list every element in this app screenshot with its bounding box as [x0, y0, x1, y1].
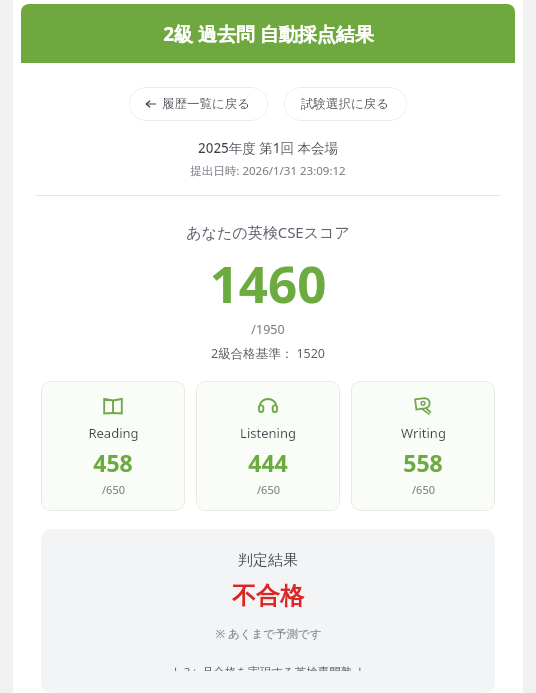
staticText: あなたの英検CSEスコア [13, 222, 523, 242]
staticText: Reading [88, 424, 139, 442]
staticText: /650 [412, 482, 435, 497]
staticText: 履歴一覧に戻る [162, 96, 251, 112]
staticText: 2級 過去問 自動採点結果 [163, 21, 374, 47]
other: Listening [257, 395, 279, 417]
button[interactable]: 試験選択に戻る [284, 87, 407, 121]
staticText: 458 [93, 447, 133, 478]
staticText: 試験選択に戻る [301, 96, 390, 112]
staticText: 558 [403, 447, 443, 478]
staticText: 2級合格基準： 1520 [13, 345, 523, 362]
staticText: Listening [240, 424, 296, 442]
button[interactable]: Listening [196, 381, 340, 511]
staticText: /650 [257, 482, 280, 497]
staticText: ↓ 3ヶ月合格を実現する英検専門塾 ↓ [171, 664, 365, 671]
button[interactable]: 履歴一覧に戻る [129, 87, 268, 121]
staticText: 444 [248, 447, 288, 478]
staticText: 判定結果 [238, 551, 298, 570]
button[interactable]: Reading [41, 381, 185, 511]
staticText: ※ あくまで予測です [215, 626, 322, 642]
other: Writing [412, 395, 434, 417]
other: Reading [102, 395, 124, 417]
button[interactable]: Writing [351, 381, 495, 511]
staticText: /1950 [13, 321, 523, 338]
staticText: 提出日時: 2026/1/31 23:09:12 [13, 163, 523, 179]
staticText: 2025年度 第1回 本会場 [13, 139, 523, 157]
staticText: Writing [401, 424, 446, 442]
staticText: 1460 [13, 248, 523, 317]
staticText: /650 [102, 482, 125, 497]
staticText: 不合格 [232, 581, 304, 611]
